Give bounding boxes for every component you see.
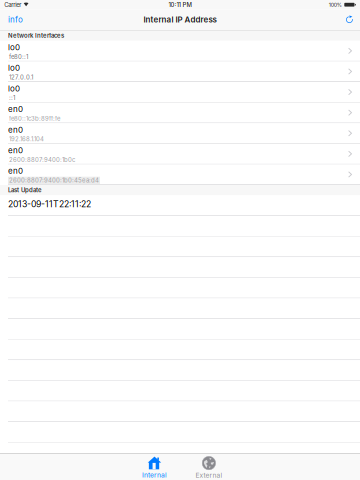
staticText: ::1 (9, 94, 15, 102)
staticText: en0 (8, 166, 23, 176)
staticText: 2600:8807:9400:1b0:45ea:d4 (9, 177, 99, 184)
staticText: Internal IP Address (143, 15, 216, 25)
staticText: lo0 (8, 63, 20, 73)
staticText: fe80::1c3b:89ff:fe (9, 115, 60, 122)
staticText: fe80::1 (9, 53, 28, 60)
button[interactable]: lo0 (0, 82, 360, 103)
staticText: Carrier (4, 1, 21, 8)
button[interactable]: External (188, 454, 230, 480)
staticText: en0 (8, 104, 23, 114)
button[interactable]: en0 (0, 164, 360, 185)
staticText: info (8, 15, 23, 25)
button[interactable]: Internal (133, 454, 175, 480)
staticText: Last Update (8, 186, 42, 194)
staticText: lo0 (8, 42, 20, 52)
button[interactable]: en0 (0, 144, 360, 164)
staticText: en0 (8, 125, 23, 135)
staticText: 127.0.0.1 (9, 74, 33, 81)
staticText: 2013-09-11T22:11:22 (8, 199, 91, 209)
staticText: en0 (8, 145, 23, 155)
staticText: 10:11 PM (168, 1, 191, 8)
staticText: Network Interfaces (8, 32, 64, 39)
button[interactable]: lo0 (0, 61, 360, 82)
button[interactable]: Refresh (339, 9, 360, 30)
button[interactable]: en0 (0, 103, 360, 123)
staticText: External (195, 471, 222, 479)
button[interactable]: info (0, 9, 31, 30)
button[interactable]: en0 (0, 123, 360, 144)
button[interactable]: lo0 (0, 41, 360, 61)
staticText: 2600:8807:9400:1b0c (9, 156, 75, 163)
staticText: 100% (329, 1, 342, 8)
staticText: 192.168.1.104 (9, 135, 44, 143)
staticText: lo0 (8, 84, 20, 93)
staticText: Internal (142, 471, 167, 479)
